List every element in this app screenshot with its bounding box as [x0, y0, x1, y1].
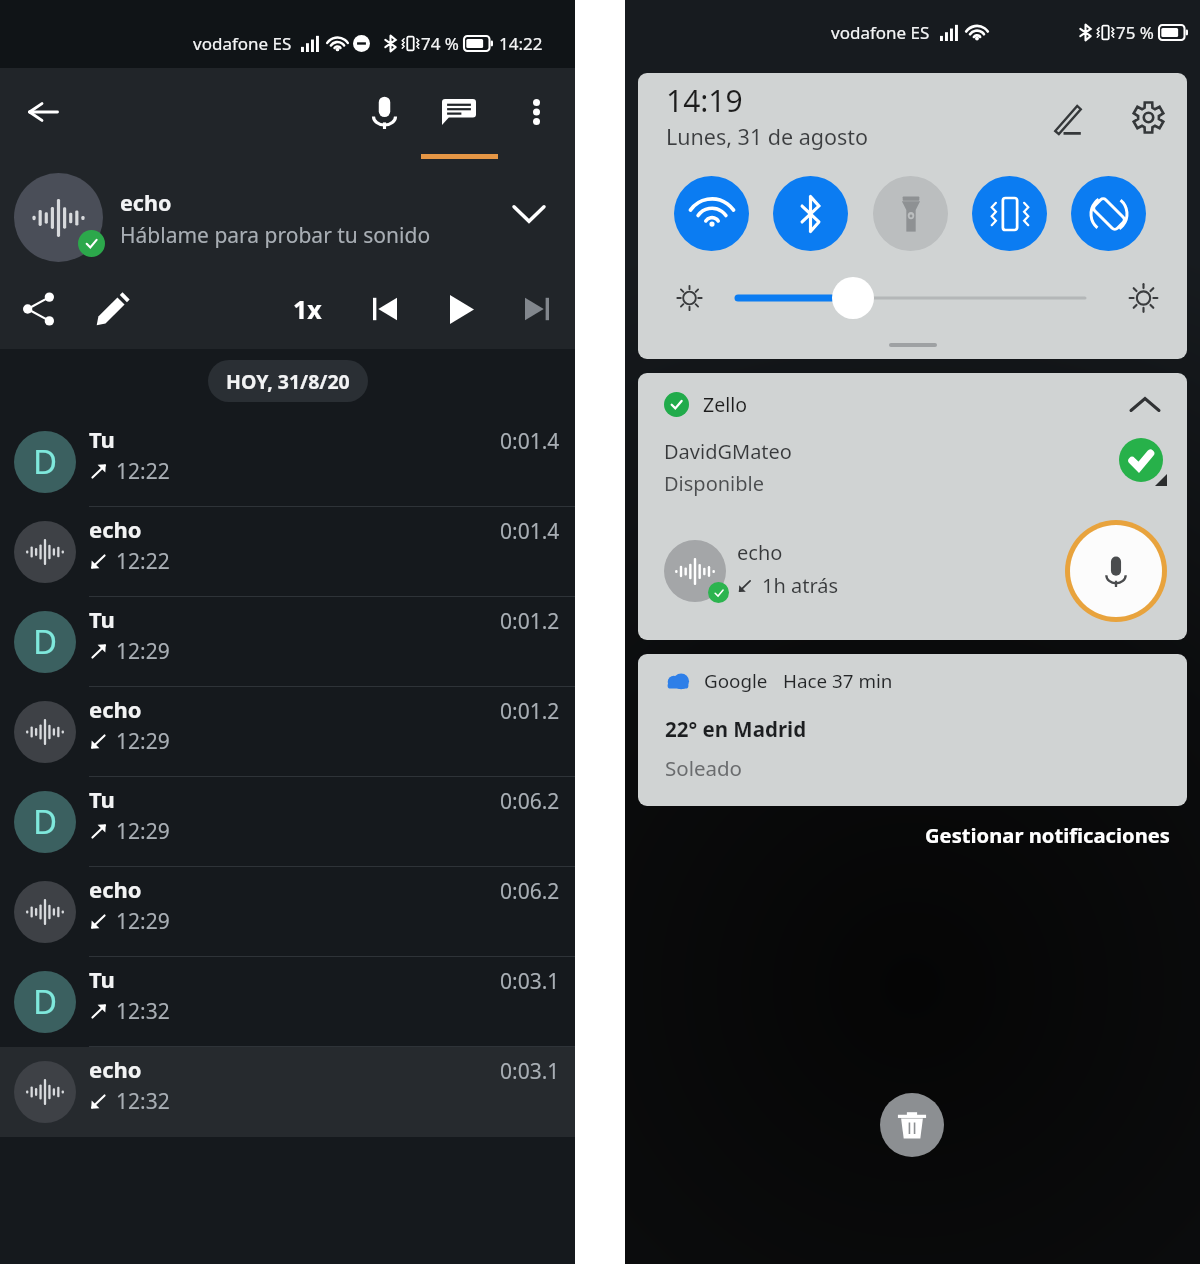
staticText: 75 % [1116, 21, 1154, 44]
staticText: 12:29 [116, 817, 170, 846]
button[interactable]: Next [507, 279, 567, 339]
staticText: Zello [703, 391, 748, 418]
staticText: 0:03.1 [500, 1057, 560, 1086]
button[interactable]: Bluetooth [773, 176, 848, 251]
staticText: 12:29 [116, 907, 170, 936]
staticText: 74 % [421, 32, 459, 55]
button[interactable]: Wi-Fi [674, 176, 749, 251]
staticText: 0:01.2 [500, 607, 560, 636]
staticText: vodafone ES [193, 32, 292, 55]
staticText: HOY, 31/8/20 [226, 368, 350, 395]
staticText: 0:01.4 [500, 427, 560, 456]
staticText: 1x [293, 292, 322, 326]
staticText: echo [89, 1054, 142, 1084]
staticText: 0:01.2 [500, 697, 560, 726]
button[interactable]: echo [0, 867, 575, 957]
staticText: 1h atrás [762, 572, 839, 599]
button[interactable]: Back [10, 79, 76, 145]
staticText: 14:22 [499, 32, 543, 55]
button[interactable]: D [0, 417, 575, 507]
staticText: vodafone ES [831, 21, 930, 44]
staticText: 0:06.2 [500, 787, 560, 816]
button[interactable]: Flashlight [873, 176, 948, 251]
staticText: echo [737, 539, 783, 566]
staticText: D [33, 619, 58, 664]
staticText: Gestionar notificaciones [925, 821, 1170, 849]
staticText: Tu [89, 784, 115, 814]
staticText: echo [89, 874, 142, 904]
button[interactable]: Share [8, 279, 68, 339]
button[interactable]: More options [503, 79, 569, 145]
staticText: 0:06.2 [500, 877, 560, 906]
staticText: 12:32 [116, 997, 170, 1026]
staticText: Soleado [665, 754, 743, 782]
button[interactable]: Text messages [426, 79, 492, 145]
button[interactable]: echo [0, 1047, 575, 1137]
staticText: Google [704, 668, 768, 694]
staticText: DavidGMateo [664, 438, 792, 465]
staticText: echo [120, 188, 172, 217]
button[interactable]: Auto rotate [1071, 176, 1146, 251]
button[interactable]: D [0, 957, 575, 1047]
staticText: Disponible [664, 470, 764, 497]
staticText: D [33, 979, 58, 1024]
button[interactable]: Talk [1065, 520, 1167, 622]
staticText: Tu [89, 424, 115, 454]
button[interactable]: echo [0, 507, 575, 597]
button[interactable]: Collapse [1123, 382, 1167, 426]
button[interactable]: Edit [83, 279, 143, 339]
staticText: Tu [89, 964, 115, 994]
button[interactable]: Clear all notifications [880, 1093, 944, 1157]
staticText: 22° en Madrid [665, 715, 807, 743]
staticText: Háblame para probar tu sonido [120, 221, 431, 250]
staticText: D [33, 799, 58, 844]
staticText: 12:22 [116, 547, 170, 576]
staticText: 12:29 [116, 727, 170, 756]
staticText: echo [89, 514, 142, 544]
button[interactable]: D [0, 777, 575, 867]
button[interactable]: Play [432, 279, 492, 339]
staticText: 12:32 [116, 1087, 170, 1116]
button[interactable]: echo [0, 687, 575, 777]
staticText: echo [89, 694, 142, 724]
staticText: Hace 37 min [783, 668, 893, 694]
button[interactable]: D [0, 597, 575, 687]
button[interactable]: Voice messages [351, 79, 417, 145]
button[interactable]: Playback speed [277, 279, 337, 339]
staticText: 12:22 [116, 457, 170, 486]
button[interactable]: Gestionar notificaciones [917, 815, 1178, 855]
staticText: 14:19 [666, 80, 743, 121]
staticText: 0:01.4 [500, 517, 560, 546]
button[interactable]: Edit [1044, 92, 1096, 144]
staticText: 12:29 [116, 637, 170, 666]
button[interactable]: Vibrate [972, 176, 1047, 251]
button[interactable]: HOY, 31/8/20 [208, 360, 368, 402]
button[interactable]: Previous [355, 279, 415, 339]
staticText: D [33, 439, 58, 484]
staticText: 0:03.1 [500, 967, 560, 996]
button[interactable]: Collapse [501, 186, 557, 242]
button[interactable]: Settings [1122, 91, 1174, 143]
staticText: Lunes, 31 de agosto [666, 122, 869, 151]
staticText: Tu [89, 604, 115, 634]
